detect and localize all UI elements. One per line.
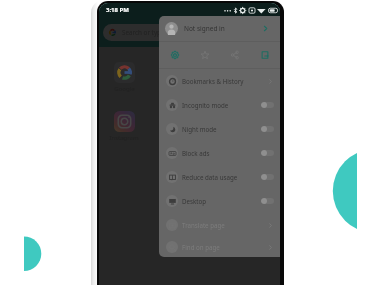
button[interactable]: Not signed in [159, 16, 280, 41]
button[interactable]: Instagram [101, 111, 147, 142]
button[interactable]: Google [101, 62, 147, 93]
staticText: Reduce data usage [182, 173, 238, 181]
button[interactable]: Search or type web address [103, 24, 273, 41]
staticText: Find on page [182, 243, 220, 251]
staticText: Bookmarks & History [182, 77, 244, 85]
button[interactable]: Block ads [159, 141, 280, 165]
staticText: Night mode [182, 125, 217, 133]
staticText: 3:18 PM [106, 6, 129, 14]
button[interactable]: Rewards [159, 42, 190, 68]
button[interactable]: Incognito mode [159, 93, 280, 117]
staticText: Not signed in [184, 24, 225, 33]
staticText: Block ads [182, 149, 210, 157]
button[interactable]: Desktop [159, 189, 280, 213]
staticText: Desktop [182, 197, 207, 205]
button[interactable]: Night mode [159, 117, 280, 141]
button[interactable]: Find on page [159, 237, 280, 257]
staticText: Search or type web address [122, 28, 204, 37]
button[interactable]: Translate page [159, 213, 280, 237]
button[interactable]: Exit [250, 42, 280, 68]
button[interactable]: Reduce data usage [159, 165, 280, 189]
staticText: Translate page [182, 221, 225, 229]
staticText: Incognito mode [182, 101, 229, 109]
button[interactable]: Bookmarks & History [159, 69, 280, 93]
